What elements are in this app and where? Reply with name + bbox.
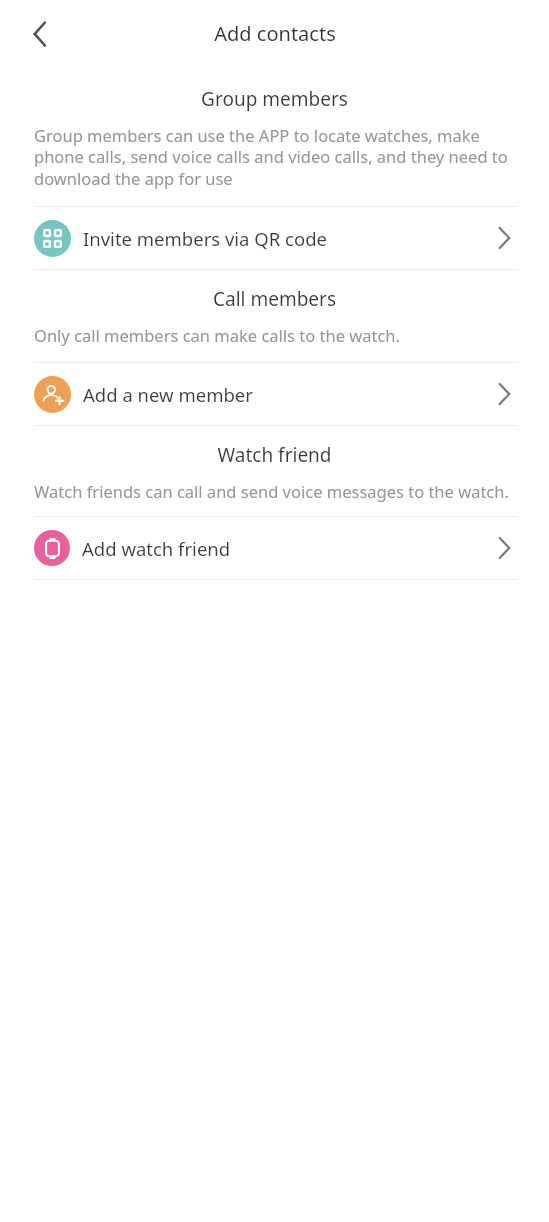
staticText: Group members [0, 86, 549, 112]
button[interactable]: Back [16, 10, 64, 58]
staticText: Only call members can make calls to the … [34, 324, 518, 346]
staticText: Watch friend [0, 442, 549, 468]
button[interactable]: Add watch friend [0, 517, 549, 579]
staticText: Group members can use the APP to locate … [34, 124, 518, 190]
staticText: Watch friends can call and send voice me… [34, 480, 518, 502]
staticText: Add watch friend [82, 536, 231, 561]
staticText: Invite members via QR code [83, 226, 327, 251]
staticText: Call members [0, 286, 549, 312]
staticText: Add a new member [83, 382, 253, 407]
button[interactable]: Add a new member [0, 363, 549, 425]
button[interactable]: Invite members via QR code [0, 207, 549, 269]
staticText: Add contacts [214, 20, 336, 47]
